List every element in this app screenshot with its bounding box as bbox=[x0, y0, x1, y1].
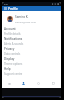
button[interactable]: More bbox=[46, 78, 61, 88]
staticText: samira@mail.com bbox=[15, 20, 36, 23]
staticText: Data controls bbox=[4, 52, 21, 56]
staticText: Samira K. bbox=[15, 15, 29, 19]
staticText: Support centre bbox=[4, 72, 23, 76]
staticText: Profile bbox=[8, 7, 18, 11]
button[interactable]: Search bbox=[31, 78, 46, 88]
button[interactable]: Home bbox=[2, 78, 16, 88]
staticText: 9:41 bbox=[4, 3, 9, 6]
button[interactable]: Open navigation menu bbox=[2, 6, 8, 11]
button[interactable]: Help bbox=[2, 66, 61, 76]
staticText: Privacy bbox=[4, 47, 15, 51]
button[interactable]: Display bbox=[2, 56, 61, 66]
button[interactable]: Profile bbox=[16, 78, 31, 88]
staticText: Profile details bbox=[4, 32, 21, 36]
button[interactable]: Notifications bbox=[2, 36, 61, 46]
staticText: Display bbox=[4, 57, 15, 61]
staticText: Alerts & sounds bbox=[4, 42, 24, 46]
staticText: Help bbox=[4, 67, 11, 71]
staticText: Theme options bbox=[4, 62, 23, 66]
button[interactable]: Account bbox=[2, 26, 61, 36]
button[interactable]: Privacy bbox=[2, 46, 61, 56]
button[interactable]: Samira K. bbox=[2, 11, 61, 26]
staticText: Account bbox=[4, 27, 16, 31]
staticText: Notifications bbox=[4, 37, 23, 41]
